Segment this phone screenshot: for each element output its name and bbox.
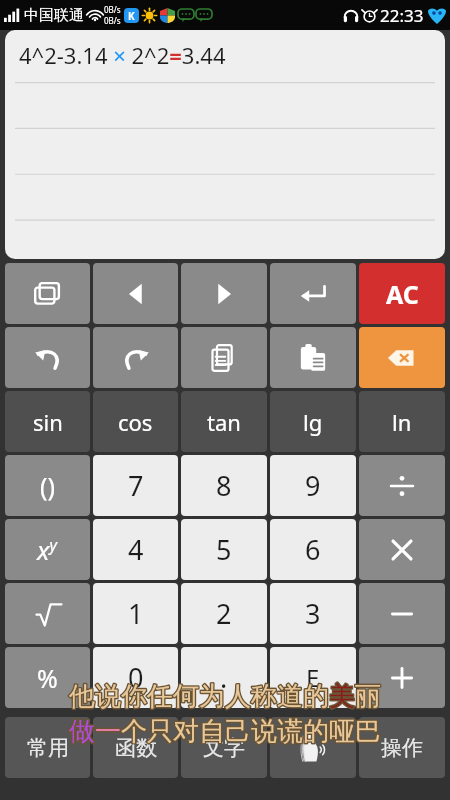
button[interactable]: sin <box>5 391 90 452</box>
button[interactable]: 3 <box>270 583 356 644</box>
button[interactable]: Multiply <box>359 519 445 580</box>
staticText: () <box>40 469 56 503</box>
button[interactable]: Copy <box>181 327 267 388</box>
staticText: 0B/s <box>104 4 121 15</box>
button[interactable]: . <box>181 647 267 708</box>
staticText: 他说你任何为人称道的美丽 <box>69 680 381 713</box>
staticText: 7 <box>128 467 144 504</box>
button[interactable]: 0 <box>93 647 178 708</box>
staticText: E <box>306 661 320 694</box>
button[interactable]: lg <box>270 391 356 452</box>
button[interactable]: cos <box>93 391 178 452</box>
staticText: 他说你任何为人称道的美丽 <box>69 680 381 713</box>
staticText: cos <box>118 407 153 437</box>
staticText: sin <box>33 407 63 437</box>
button[interactable]: xy <box>5 519 90 580</box>
staticText: AC <box>386 277 419 311</box>
button[interactable]: 操作 <box>359 717 445 778</box>
staticText: 22:33 <box>380 4 424 27</box>
button[interactable]: Redo <box>93 327 178 388</box>
staticText: 0B/s <box>104 15 121 26</box>
staticText: 3 <box>305 595 321 632</box>
staticText: 函数 <box>115 735 157 761</box>
button[interactable]: % <box>5 647 90 708</box>
button[interactable]: Move left <box>93 263 178 324</box>
staticText: xy <box>37 532 58 567</box>
staticText: % <box>37 661 58 695</box>
staticText: K <box>128 9 135 23</box>
button[interactable]: AC <box>359 263 445 324</box>
staticText: 5 <box>216 531 232 568</box>
staticText: 9 <box>305 467 321 504</box>
button[interactable]: tan <box>181 391 267 452</box>
staticText: 0 <box>128 659 144 696</box>
staticText: 1 <box>128 595 144 632</box>
staticText: 操作 <box>381 735 423 761</box>
button[interactable]: ln <box>359 391 445 452</box>
button[interactable]: 7 <box>93 455 178 516</box>
staticText: 8 <box>216 467 232 504</box>
staticText: ln <box>392 407 412 437</box>
button[interactable]: Windows <box>5 263 90 324</box>
staticText: 做一个只对自己说谎的哑巴 <box>69 715 381 748</box>
button[interactable]: 6 <box>270 519 356 580</box>
button[interactable]: 4^2-3.14 × 2^2=3.44 <box>5 30 445 259</box>
button[interactable]: Divide <box>359 455 445 516</box>
button[interactable]: Plus <box>359 647 445 708</box>
button[interactable]: Voice input <box>270 717 356 778</box>
button[interactable]: Undo <box>5 327 90 388</box>
button[interactable]: 5 <box>181 519 267 580</box>
staticText: 中国联通 <box>24 6 84 25</box>
button[interactable]: () <box>5 455 90 516</box>
button[interactable]: 1 <box>93 583 178 644</box>
button[interactable]: 文字 <box>181 717 267 778</box>
button[interactable]: Backspace <box>359 327 445 388</box>
button[interactable]: E <box>270 647 356 708</box>
button[interactable]: Paste <box>270 327 356 388</box>
button[interactable]: 4 <box>93 519 178 580</box>
staticText: 6 <box>305 531 321 568</box>
staticText: lg <box>303 407 323 437</box>
button[interactable]: 常用 <box>5 717 90 778</box>
staticText: 2 <box>216 595 232 632</box>
button[interactable]: Nth root <box>5 583 90 644</box>
button[interactable]: 2 <box>181 583 267 644</box>
button[interactable]: Enter <box>270 263 356 324</box>
button[interactable]: Minus <box>359 583 445 644</box>
button[interactable]: 函数 <box>93 717 178 778</box>
button[interactable]: 9 <box>270 455 356 516</box>
staticText: 做一个只对自己说谎的哑巴 <box>69 715 381 748</box>
staticText: 文字 <box>203 735 245 761</box>
staticText: 4^2-3.14 × 2^2=3.44 <box>19 40 226 70</box>
staticText: 4 <box>128 531 144 568</box>
button[interactable]: 8 <box>181 455 267 516</box>
button[interactable]: Move right <box>181 263 267 324</box>
staticText: . <box>220 659 228 696</box>
staticText: tan <box>207 407 241 437</box>
staticText: 常用 <box>27 735 69 761</box>
